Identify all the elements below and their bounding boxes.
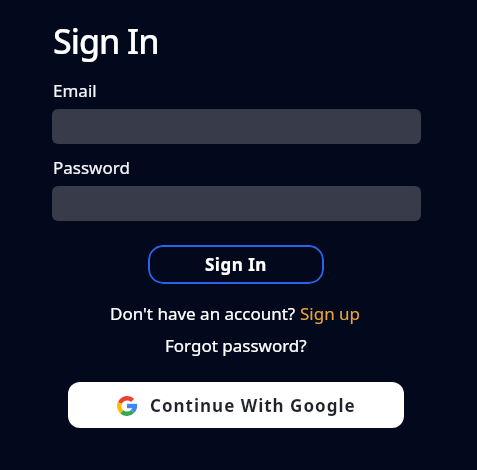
staticText: Email <box>53 79 97 102</box>
staticText: Don't have an account? <box>110 302 300 325</box>
staticText: Sign In <box>53 18 159 64</box>
staticText: Password <box>53 156 130 179</box>
staticText: Continue With Google <box>150 394 356 417</box>
staticText: Sign In <box>205 253 267 276</box>
button[interactable]: Sign In <box>148 245 324 284</box>
button[interactable]: Sign up <box>300 302 361 325</box>
button[interactable]: Forgot password? <box>165 334 307 357</box>
button[interactable]: Continue With Google <box>68 382 404 428</box>
